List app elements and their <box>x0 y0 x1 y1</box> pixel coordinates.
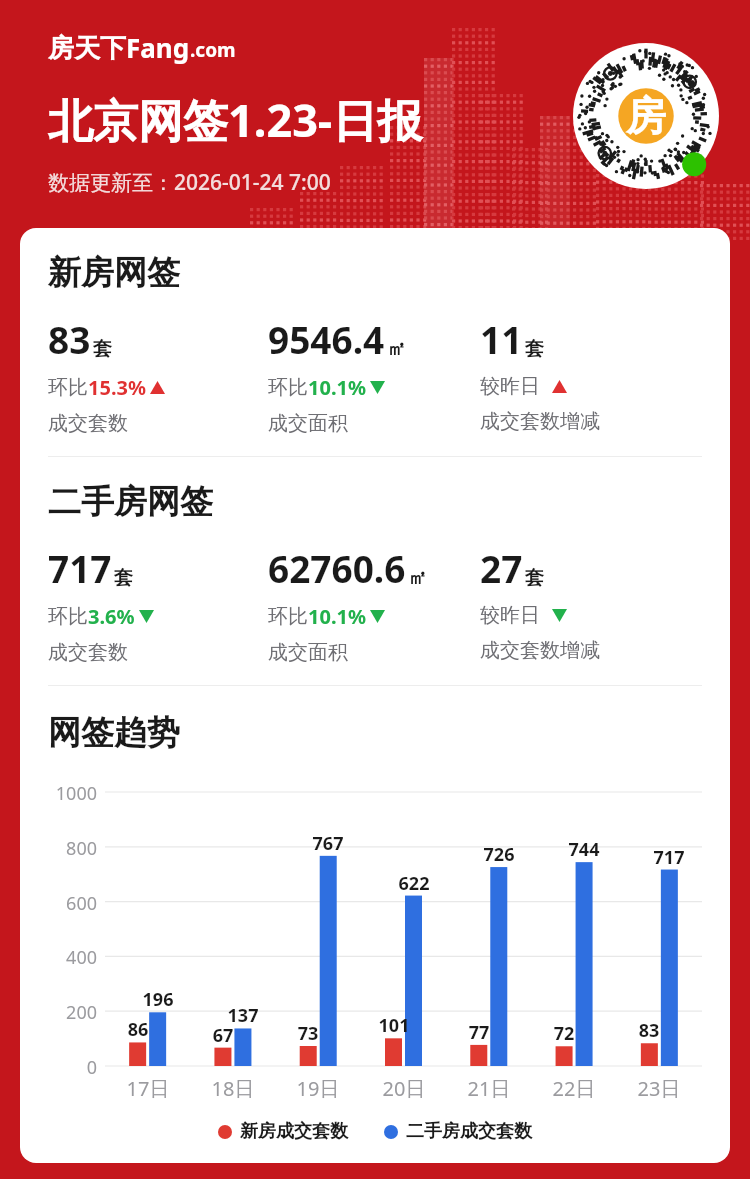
staticText: 600 <box>42 891 97 916</box>
staticText: 717 <box>646 845 692 870</box>
staticText: 环比 <box>48 375 88 400</box>
staticText: 10.1% <box>308 603 366 630</box>
staticText: 137 <box>220 1003 266 1028</box>
staticText: 房 <box>626 91 666 141</box>
staticText: 27 <box>480 543 523 593</box>
staticText: 较昨日 <box>480 374 540 399</box>
staticText: 400 <box>42 945 97 970</box>
staticText: 10.1% <box>308 374 366 401</box>
staticText: 86 <box>115 1017 161 1042</box>
staticText: 18日 <box>203 1075 263 1102</box>
staticText: 网签趋势 <box>48 712 180 754</box>
staticText: 622 <box>391 871 437 896</box>
staticText: 726 <box>476 842 522 867</box>
staticText: 二手房成交套数 <box>406 1120 532 1143</box>
staticText: 17日 <box>118 1075 178 1102</box>
staticText: 83 <box>626 1018 672 1043</box>
staticText: 21日 <box>459 1075 519 1102</box>
staticText: 9546.4 <box>268 314 385 364</box>
staticText: 环比 <box>48 604 88 629</box>
staticText: 新房网签 <box>48 252 180 294</box>
staticText: 套 <box>93 337 112 361</box>
staticText: 较昨日 <box>480 603 540 628</box>
staticText: 717 <box>48 543 112 593</box>
staticText: 套 <box>525 337 544 361</box>
staticText: 数据更新至：2026-01-24 7:00 <box>48 168 331 197</box>
staticText: Fang <box>126 30 190 65</box>
staticText: 800 <box>42 836 97 861</box>
staticText: 11 <box>480 314 523 364</box>
staticText: ㎡ <box>387 337 406 361</box>
staticText: 成交套数 <box>48 640 128 665</box>
staticText: 新房成交套数 <box>240 1120 348 1143</box>
staticText: 套 <box>114 566 133 590</box>
staticText: 19日 <box>288 1075 348 1102</box>
staticText: 20日 <box>374 1075 434 1102</box>
staticText: 101 <box>371 1013 417 1038</box>
staticText: 72 <box>541 1021 587 1046</box>
staticText: 15.3% <box>88 374 146 401</box>
staticText: 1000 <box>42 781 97 806</box>
staticText: 767 <box>305 831 351 856</box>
staticText: 成交面积 <box>268 640 348 665</box>
staticText: 房天下 <box>48 32 126 65</box>
staticText: 77 <box>456 1020 502 1045</box>
staticText: 环比 <box>268 604 308 629</box>
staticText: 成交套数增减 <box>480 409 600 434</box>
staticText: .com <box>190 37 236 63</box>
staticText: 环比 <box>268 375 308 400</box>
staticText: 83 <box>48 314 91 364</box>
staticText: 成交套数 <box>48 411 128 436</box>
staticText: 二手房网签 <box>48 481 213 523</box>
staticText: 成交面积 <box>268 411 348 436</box>
button[interactable]: 二手房成交套数 <box>384 1120 532 1143</box>
staticText: 套 <box>525 566 544 590</box>
staticText: 744 <box>561 837 607 862</box>
staticText: 200 <box>42 1000 97 1025</box>
staticText: 73 <box>285 1021 331 1046</box>
button[interactable]: 房天下小程序码 <box>573 43 719 189</box>
staticText: 196 <box>135 987 181 1012</box>
staticText: 62760.6 <box>268 543 406 593</box>
staticText: 3.6% <box>88 603 135 630</box>
staticText: 67 <box>200 1023 246 1048</box>
staticText: ㎡ <box>408 566 427 590</box>
staticText: 22日 <box>544 1075 604 1102</box>
button[interactable]: 新房成交套数 <box>218 1120 348 1143</box>
staticText: 北京网签1.23-日报 <box>48 89 423 150</box>
staticText: 0 <box>42 1055 97 1080</box>
staticText: 成交套数增减 <box>480 638 600 663</box>
staticText: 23日 <box>629 1075 689 1102</box>
